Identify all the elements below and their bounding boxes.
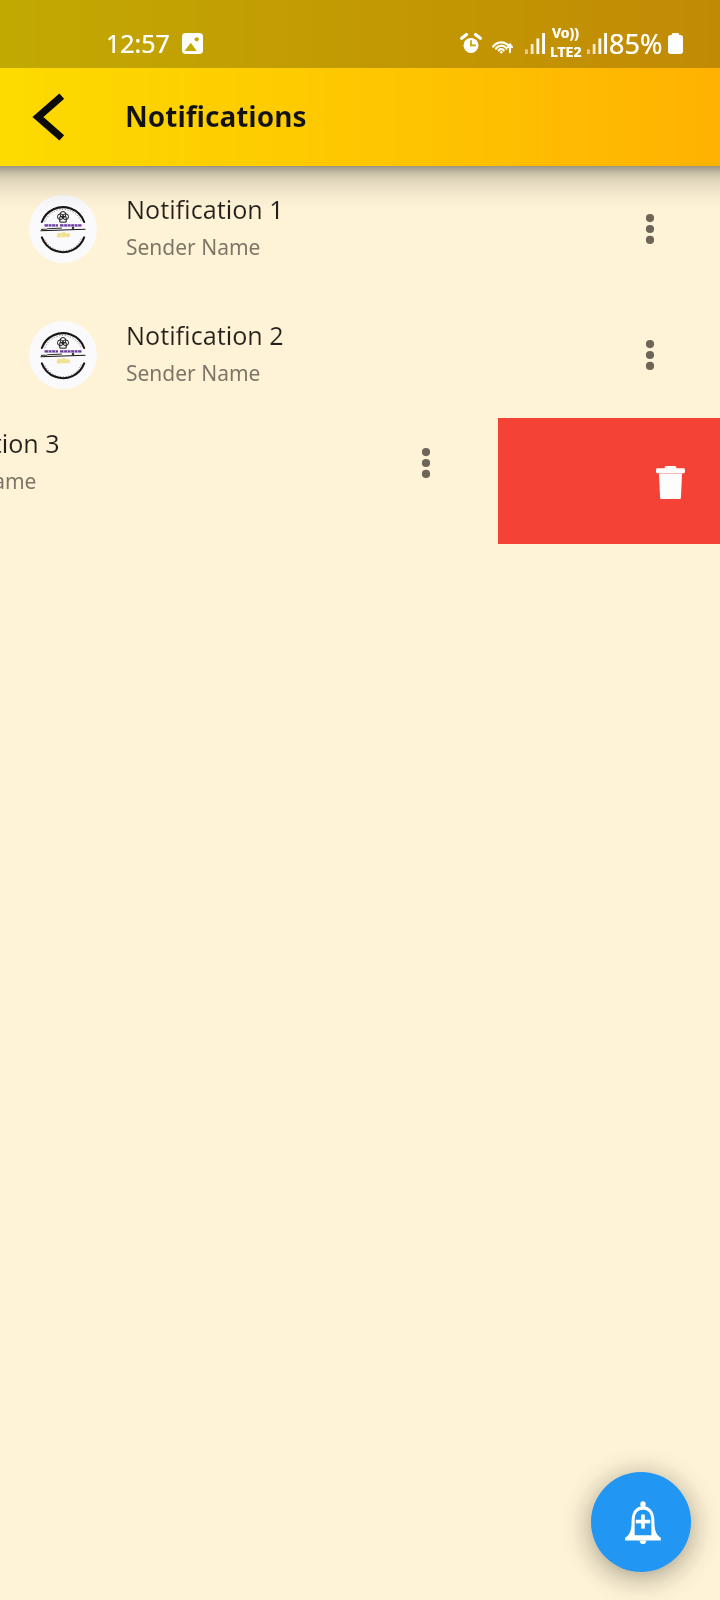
button[interactable]: Back bbox=[4, 73, 92, 161]
staticText: 12:57 bbox=[106, 26, 170, 60]
staticText: 85% bbox=[609, 25, 663, 62]
staticText: Sender Name bbox=[126, 359, 261, 388]
button[interactable]: Add notification bbox=[591, 1472, 691, 1572]
staticText: Notifications bbox=[125, 97, 307, 135]
staticText: Vo)) bbox=[552, 23, 580, 42]
staticText: Notification 2 bbox=[126, 318, 284, 352]
staticText: Notification 1 bbox=[126, 192, 284, 226]
staticText: Notification 3 bbox=[0, 426, 60, 460]
button[interactable]: More options bbox=[381, 418, 471, 508]
staticText: Sender Name bbox=[0, 467, 37, 496]
button[interactable]: More options bbox=[605, 310, 695, 400]
button[interactable]: Notification 1 bbox=[0, 166, 720, 292]
button[interactable]: Delete bbox=[498, 418, 720, 544]
button[interactable]: Notification 2 bbox=[0, 292, 720, 418]
staticText: Sender Name bbox=[126, 233, 261, 262]
button[interactable]: More options bbox=[605, 184, 695, 274]
staticText: LTE2 bbox=[550, 42, 582, 61]
